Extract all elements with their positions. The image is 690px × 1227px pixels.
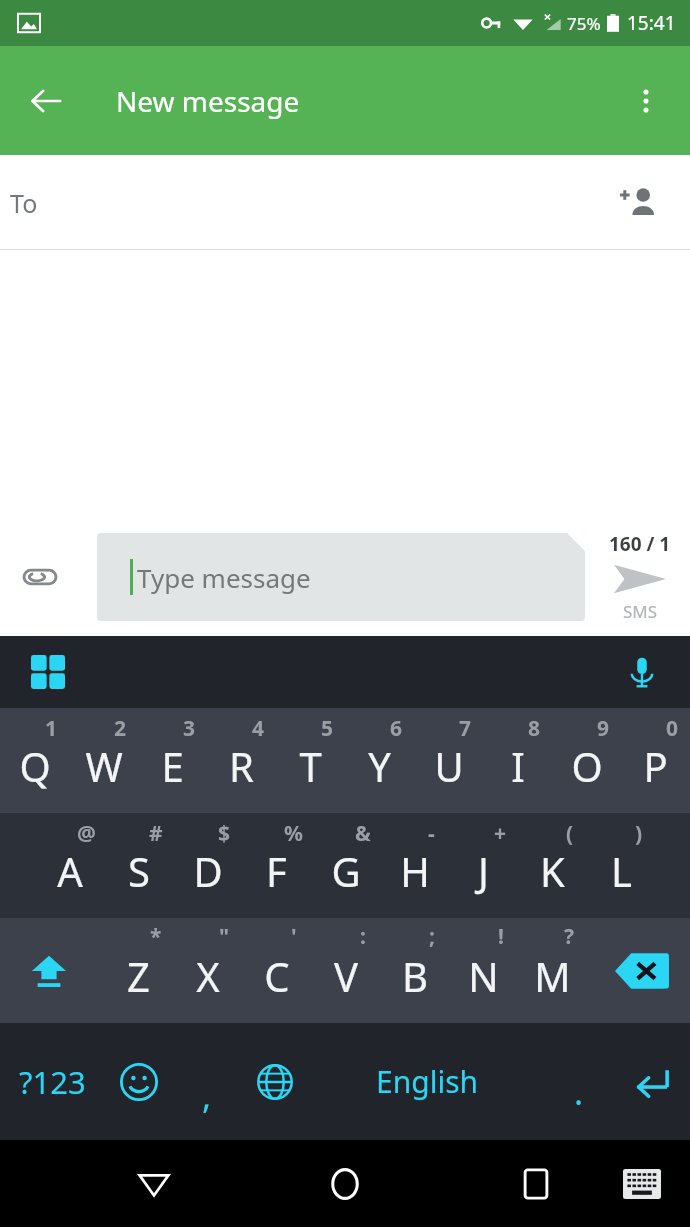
staticText: ?123 [19, 1061, 86, 1103]
button[interactable]: P [621, 708, 690, 813]
staticText: 3 [183, 714, 196, 743]
staticText: 75% [567, 12, 601, 35]
button[interactable]: Recents [502, 1150, 570, 1218]
button[interactable]: O [552, 708, 621, 813]
button[interactable]: Switch keyboard [612, 1154, 672, 1214]
button[interactable]: W [69, 708, 138, 813]
staticText: I [511, 739, 525, 793]
staticText: $ [218, 819, 231, 848]
staticText: # [149, 819, 163, 848]
staticText: H [400, 844, 430, 898]
button[interactable]: Home [311, 1150, 379, 1218]
staticText: O [571, 739, 603, 793]
button[interactable]: I [483, 708, 552, 813]
staticText: Y [368, 739, 391, 793]
staticText: ? [564, 922, 575, 951]
button[interactable]: Z [104, 918, 173, 1023]
button[interactable]: N [449, 918, 518, 1023]
staticText: SMS [623, 600, 658, 623]
button[interactable]: H [380, 813, 449, 918]
button[interactable]: X [173, 918, 242, 1023]
button[interactable]: Enter [613, 1023, 690, 1140]
staticText: F [266, 844, 287, 898]
staticText: X [196, 949, 220, 1003]
staticText: 6 [390, 714, 403, 743]
button[interactable]: T [276, 708, 345, 813]
staticText: ' [291, 922, 297, 951]
staticText: % [284, 819, 303, 848]
button[interactable]: Send SMS [590, 531, 690, 623]
button[interactable]: Back [120, 1150, 188, 1218]
staticText: D [193, 844, 223, 898]
button[interactable]: Type message [97, 533, 585, 621]
button[interactable]: Attach [10, 547, 70, 607]
button[interactable]: More options [616, 71, 676, 131]
staticText: G [331, 844, 361, 898]
staticText: T [299, 739, 322, 793]
button[interactable]: . [545, 1023, 613, 1140]
button[interactable]: Voice input [614, 644, 670, 700]
button[interactable]: Add contact [606, 171, 670, 235]
button[interactable]: Shift [0, 918, 97, 1023]
button[interactable]: C [242, 918, 311, 1023]
button[interactable]: Y [345, 708, 414, 813]
staticText: + [494, 819, 507, 848]
staticText: : [360, 922, 366, 951]
button[interactable]: F [242, 813, 311, 918]
staticText: 7 [459, 714, 472, 743]
staticText: " [219, 922, 230, 951]
button[interactable]: U [414, 708, 483, 813]
button[interactable]: Backspace [593, 918, 690, 1023]
button[interactable]: Keyboard apps [20, 644, 76, 700]
staticText: A [57, 844, 83, 898]
staticText: M [534, 949, 571, 1003]
button[interactable]: R [207, 708, 276, 813]
staticText: 4 [252, 714, 265, 743]
staticText: S [128, 844, 150, 898]
staticText: 1 [45, 714, 58, 743]
button[interactable]: A [35, 813, 104, 918]
button[interactable]: Change language [241, 1023, 309, 1140]
button[interactable]: K [518, 813, 587, 918]
button[interactable]: L [587, 813, 656, 918]
staticText: 9 [597, 714, 610, 743]
button[interactable]: English [309, 1023, 545, 1140]
staticText: ; [429, 922, 435, 951]
staticText: J [478, 844, 489, 898]
staticText: Q [19, 739, 51, 793]
staticText: 5 [321, 714, 334, 743]
staticText: , [202, 1073, 212, 1119]
staticText: N [468, 949, 499, 1003]
button[interactable]: J [449, 813, 518, 918]
button[interactable]: E [138, 708, 207, 813]
staticText: W [85, 739, 123, 793]
staticText: ) [635, 819, 643, 848]
staticText: P [643, 739, 668, 793]
staticText: & [355, 819, 371, 848]
button[interactable]: G [311, 813, 380, 918]
button[interactable]: D [173, 813, 242, 918]
staticText: ( [566, 819, 574, 848]
staticText: Z [127, 949, 150, 1003]
button[interactable]: Back [16, 71, 76, 131]
staticText: New message [116, 82, 300, 120]
staticText: B [402, 949, 428, 1003]
staticText: C [264, 949, 290, 1003]
staticText: 0 [666, 714, 679, 743]
staticText: U [434, 739, 464, 793]
button[interactable]: ?123 [0, 1023, 105, 1140]
button[interactable]: Q [0, 708, 69, 813]
staticText: 8 [528, 714, 541, 743]
button[interactable]: S [104, 813, 173, 918]
button[interactable]: V [311, 918, 380, 1023]
staticText: 15:41 [627, 10, 676, 36]
staticText: Type message [137, 560, 311, 595]
staticText: 2 [114, 714, 127, 743]
button[interactable]: M [518, 918, 587, 1023]
staticText: R [229, 739, 254, 793]
button[interactable]: , [173, 1023, 241, 1140]
button[interactable]: B [380, 918, 449, 1023]
staticText: * [150, 922, 162, 951]
staticText: L [611, 844, 632, 898]
button[interactable]: Emoji [105, 1023, 173, 1140]
